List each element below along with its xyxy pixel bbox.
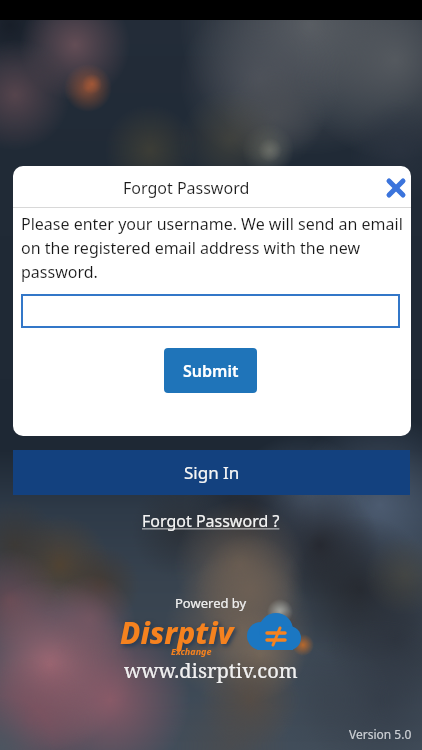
staticText: Please enter your username. We will send… bbox=[21, 213, 405, 283]
staticText: Version 5.0 bbox=[349, 726, 412, 742]
staticText: Forgot Password ? bbox=[142, 510, 280, 532]
button[interactable]: Sign In bbox=[13, 450, 410, 495]
button[interactable]: Submit bbox=[164, 348, 257, 393]
staticText: Exchange bbox=[171, 645, 212, 657]
staticText: Sign In bbox=[184, 461, 240, 484]
staticText: Forgot Password bbox=[123, 177, 250, 199]
button[interactable] bbox=[385, 177, 407, 199]
staticText: Disrptiv bbox=[120, 612, 234, 653]
button[interactable] bbox=[21, 294, 400, 328]
button[interactable]: Forgot Password ? bbox=[142, 510, 280, 532]
staticText: Powered by bbox=[175, 594, 247, 612]
staticText: Submit bbox=[183, 360, 239, 382]
staticText: www.disrptiv.com bbox=[124, 657, 298, 684]
